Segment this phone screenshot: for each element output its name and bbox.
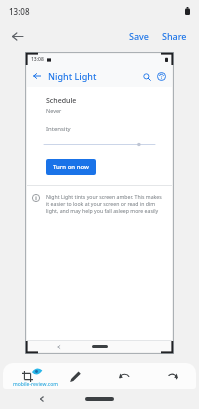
- button[interactable]: Intensity slider: [27, 140, 172, 149]
- button[interactable]: Share: [156, 26, 193, 46]
- staticText: mobile-review.com: [13, 381, 59, 388]
- button[interactable]: Help: [154, 69, 169, 84]
- staticText: 13:08: [9, 6, 30, 17]
- staticText: Night Light: [48, 70, 97, 82]
- staticText: 13:08: [31, 56, 44, 63]
- staticText: Never: [46, 107, 62, 114]
- staticText: Schedule: [46, 96, 77, 106]
- button[interactable]: Draw: [65, 366, 85, 386]
- staticText: Save: [129, 30, 150, 42]
- button[interactable]: Back: [5, 24, 29, 48]
- button[interactable]: Back: [30, 69, 44, 83]
- button[interactable]: Turn on now: [46, 159, 96, 175]
- button[interactable]: Back: [35, 392, 49, 406]
- button[interactable]: Redo: [162, 366, 182, 386]
- staticText: Turn on now: [53, 163, 89, 171]
- other: Home: [92, 345, 108, 348]
- button[interactable]: Schedule: [27, 94, 172, 116]
- button[interactable]: Home: [85, 397, 114, 401]
- button[interactable]: Undo: [114, 366, 134, 386]
- button[interactable]: Crop: [17, 366, 37, 386]
- staticText: Night Light tints your screen amber. Thi…: [46, 193, 165, 214]
- staticText: Intensity: [46, 125, 71, 133]
- button[interactable]: Save: [123, 26, 156, 46]
- button[interactable]: Search: [139, 69, 154, 84]
- other: Back: [57, 345, 61, 349]
- staticText: Share: [162, 30, 187, 42]
